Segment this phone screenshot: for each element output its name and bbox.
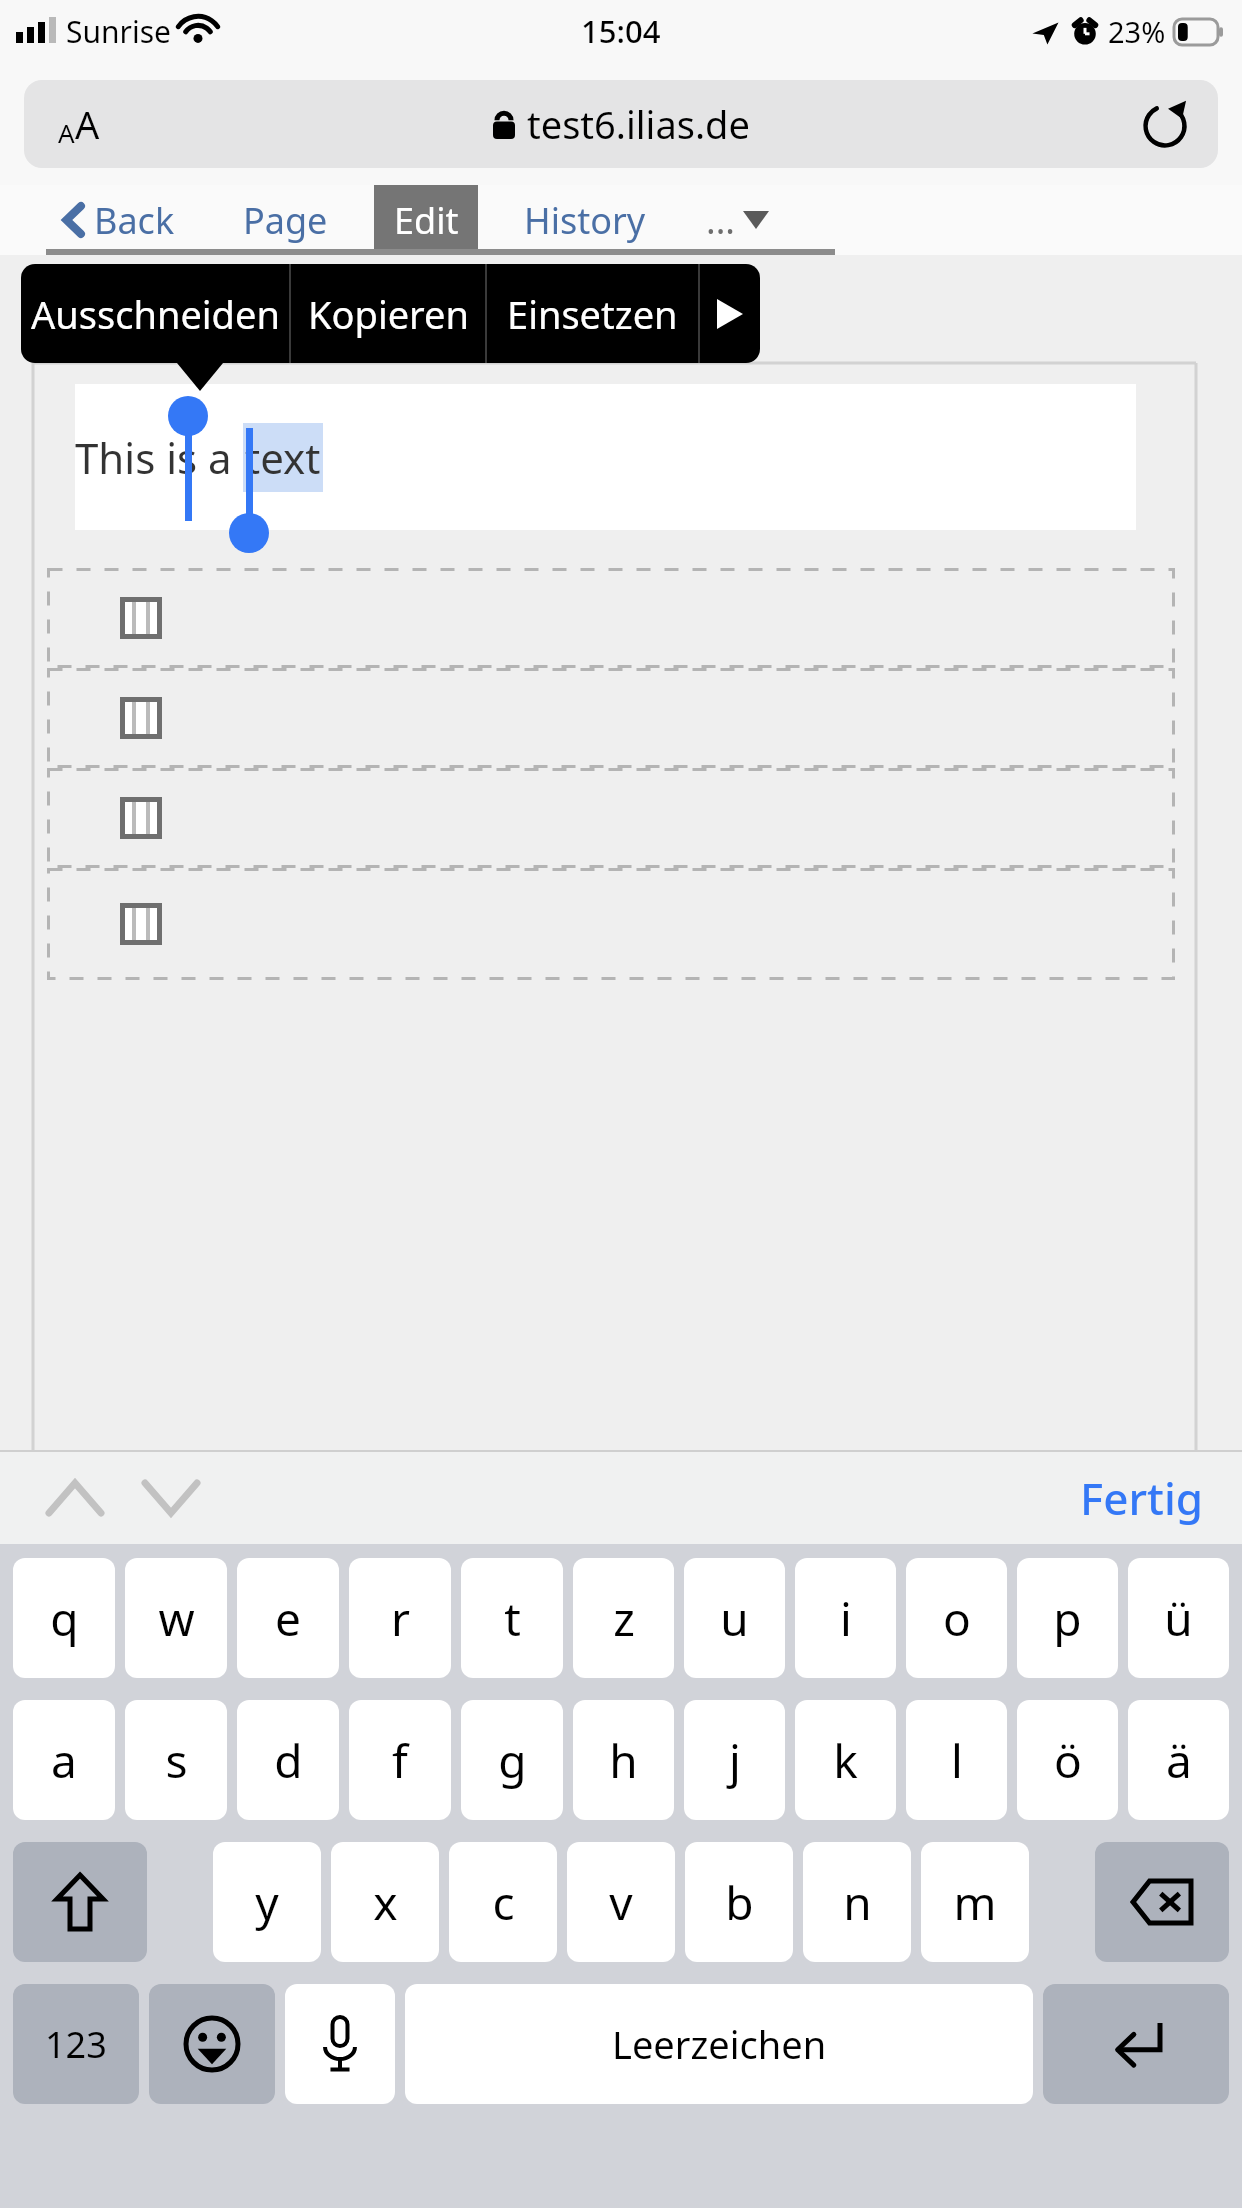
button[interactable]: d [237, 1700, 339, 1820]
staticText: Sunrise [66, 11, 171, 52]
button[interactable]: p [1017, 1558, 1118, 1678]
button[interactable]: y [213, 1842, 321, 1962]
staticText: A [58, 115, 75, 150]
button[interactable]: f [349, 1700, 451, 1820]
staticText: z [613, 1587, 635, 1650]
button[interactable]: x [331, 1842, 439, 1962]
button[interactable]: h [573, 1700, 674, 1820]
button[interactable]: Previous field [42, 1465, 108, 1531]
button[interactable]: i [795, 1558, 896, 1678]
button[interactable] [47, 668, 1175, 768]
button[interactable]: o [906, 1558, 1007, 1678]
staticText: Edit [394, 196, 459, 245]
staticText: x [373, 1871, 398, 1934]
staticText: a [51, 1729, 77, 1792]
button[interactable]: z [573, 1558, 674, 1678]
button[interactable]: g [461, 1700, 563, 1820]
button[interactable]: l [906, 1700, 1007, 1820]
staticText: Leerzeichen [612, 2018, 827, 2070]
staticText: h [609, 1729, 638, 1792]
staticText: Back [94, 196, 175, 245]
button[interactable]: Reload [1138, 97, 1192, 151]
staticText: 23% [1108, 12, 1166, 51]
button[interactable] [47, 868, 1175, 980]
staticText: e [275, 1587, 301, 1650]
staticText: j [729, 1729, 741, 1792]
button[interactable]: Next field [138, 1465, 204, 1531]
staticText: Einsetzen [507, 288, 678, 340]
button[interactable]: b [685, 1842, 793, 1962]
button[interactable]: Return [1043, 1984, 1229, 2104]
staticText: q [50, 1587, 79, 1650]
staticText: ü [1164, 1587, 1193, 1650]
button[interactable]: Shift [13, 1842, 147, 1962]
staticText: n [843, 1871, 872, 1934]
staticText: s [165, 1729, 188, 1792]
button[interactable]: More actions [700, 264, 760, 363]
button[interactable]: Kopieren [291, 264, 485, 363]
button[interactable]: Ausschneiden [21, 264, 289, 363]
button[interactable]: Fertig [1080, 1468, 1204, 1528]
staticText: f [392, 1729, 408, 1792]
button[interactable]: Emoji [149, 1984, 275, 2104]
staticText: 123 [45, 2020, 107, 2069]
button[interactable]: History [524, 185, 646, 255]
button[interactable]: Dictate [285, 1984, 395, 2104]
staticText: ... [706, 196, 735, 245]
staticText: c [492, 1871, 515, 1934]
staticText: g [498, 1729, 527, 1792]
button[interactable]: m [921, 1842, 1029, 1962]
staticText: y [255, 1871, 279, 1934]
button[interactable]: 123 [13, 1984, 139, 2104]
button[interactable]: v [567, 1842, 675, 1962]
staticText: o [943, 1587, 971, 1650]
button[interactable]: Backspace [1095, 1842, 1229, 1962]
button[interactable]: e [237, 1558, 339, 1678]
button[interactable]: ä [1128, 1700, 1229, 1820]
button[interactable]: Text size [58, 98, 100, 150]
button[interactable]: u [684, 1558, 785, 1678]
staticText: Kopieren [308, 288, 469, 340]
button[interactable]: q [13, 1558, 115, 1678]
button[interactable]: r [349, 1558, 451, 1678]
staticText: u [720, 1587, 749, 1650]
staticText: t [504, 1587, 521, 1650]
button[interactable]: Text size [24, 80, 1218, 168]
button[interactable]: Page [243, 185, 328, 255]
staticText: ö [1054, 1729, 1082, 1792]
staticText: This is a [75, 429, 243, 486]
button[interactable]: w [125, 1558, 227, 1678]
button[interactable]: j [684, 1700, 785, 1820]
staticText: 15:04 [581, 10, 661, 52]
button[interactable]: k [795, 1700, 896, 1820]
button[interactable] [75, 384, 1136, 530]
button[interactable]: More [706, 185, 769, 255]
staticText: l [951, 1729, 963, 1792]
staticText: m [953, 1871, 997, 1934]
staticText: History [524, 196, 646, 245]
button[interactable]: Back [64, 185, 175, 255]
staticText: Ausschneiden [31, 288, 280, 340]
button[interactable]: s [125, 1700, 227, 1820]
button[interactable]: Leerzeichen [405, 1984, 1033, 2104]
button[interactable]: t [461, 1558, 563, 1678]
staticText: d [274, 1729, 303, 1792]
button[interactable]: n [803, 1842, 911, 1962]
button[interactable]: a [13, 1700, 115, 1820]
button[interactable]: Einsetzen [487, 264, 698, 363]
staticText: k [833, 1729, 858, 1792]
staticText: r [391, 1587, 410, 1650]
staticText: p [1053, 1587, 1082, 1650]
staticText: text [245, 429, 321, 486]
staticText: A [75, 98, 100, 150]
button[interactable] [47, 768, 1175, 868]
staticText: test6.ilias.de [527, 98, 750, 150]
button[interactable]: ü [1128, 1558, 1229, 1678]
staticText: Fertig [1080, 1468, 1204, 1528]
button[interactable]: ö [1017, 1700, 1118, 1820]
button[interactable] [47, 568, 1175, 668]
button[interactable]: c [449, 1842, 557, 1962]
staticText: i [840, 1587, 852, 1650]
button[interactable]: Edit [374, 185, 478, 255]
staticText: Page [243, 196, 328, 245]
